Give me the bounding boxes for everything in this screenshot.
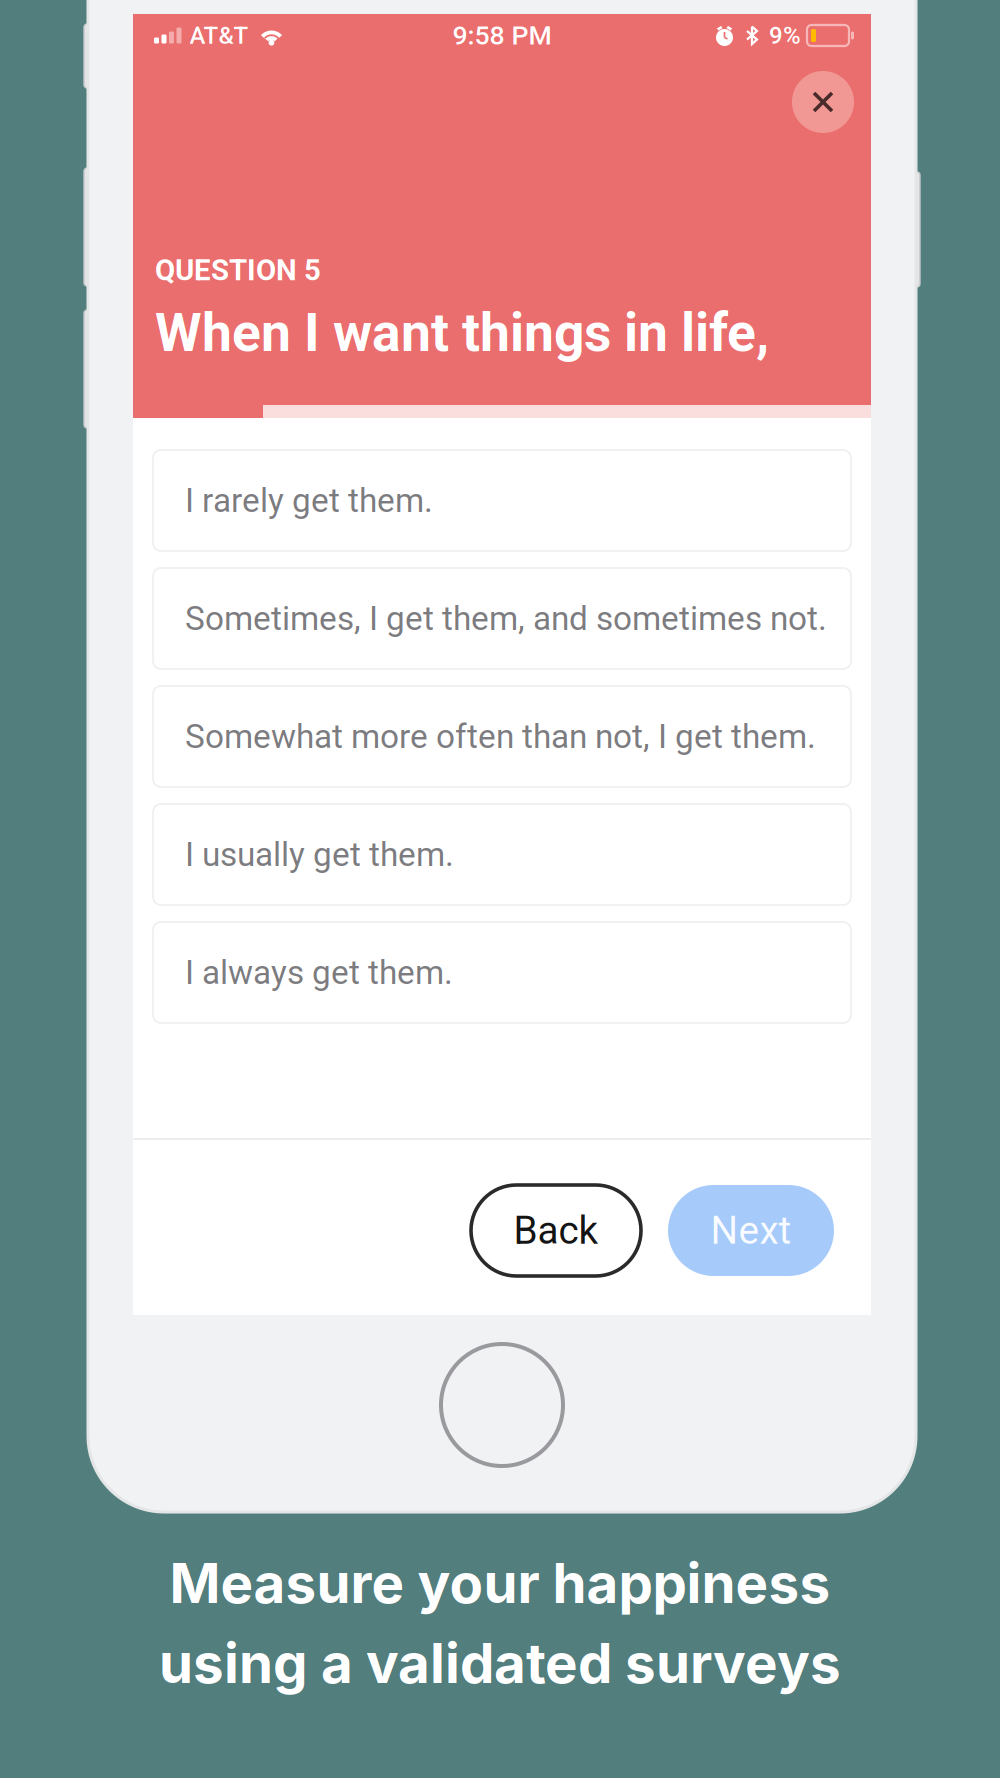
button[interactable]: Close bbox=[792, 71, 854, 133]
staticText: 9:58 PM bbox=[452, 20, 551, 51]
staticText: Back bbox=[513, 1208, 598, 1253]
button[interactable]: Back bbox=[471, 1185, 641, 1276]
staticText: Next bbox=[710, 1208, 791, 1253]
staticText: When I want things in life, bbox=[155, 301, 769, 364]
staticText: Somewhat more often than not, I get them… bbox=[185, 717, 816, 756]
staticText: I rarely get them. bbox=[185, 481, 433, 520]
staticText: I always get them. bbox=[185, 953, 453, 992]
staticText: Measure your happiness bbox=[169, 1550, 830, 1616]
staticText: AT&T bbox=[189, 21, 248, 49]
button[interactable]: Somewhat more often than not, I get them… bbox=[153, 686, 851, 787]
staticText: QUESTION 5 bbox=[155, 253, 321, 287]
staticText: Sometimes, I get them, and sometimes not… bbox=[185, 599, 827, 638]
button[interactable]: I always get them. bbox=[153, 922, 851, 1023]
staticText: 9% bbox=[769, 21, 801, 49]
button[interactable]: I usually get them. bbox=[153, 804, 851, 905]
button[interactable]: I rarely get them. bbox=[153, 450, 851, 551]
button[interactable]: Next bbox=[668, 1185, 834, 1276]
staticText: I usually get them. bbox=[185, 835, 454, 874]
staticText: using a validated surveys bbox=[159, 1630, 841, 1696]
button[interactable]: Sometimes, I get them, and sometimes not… bbox=[153, 568, 851, 669]
